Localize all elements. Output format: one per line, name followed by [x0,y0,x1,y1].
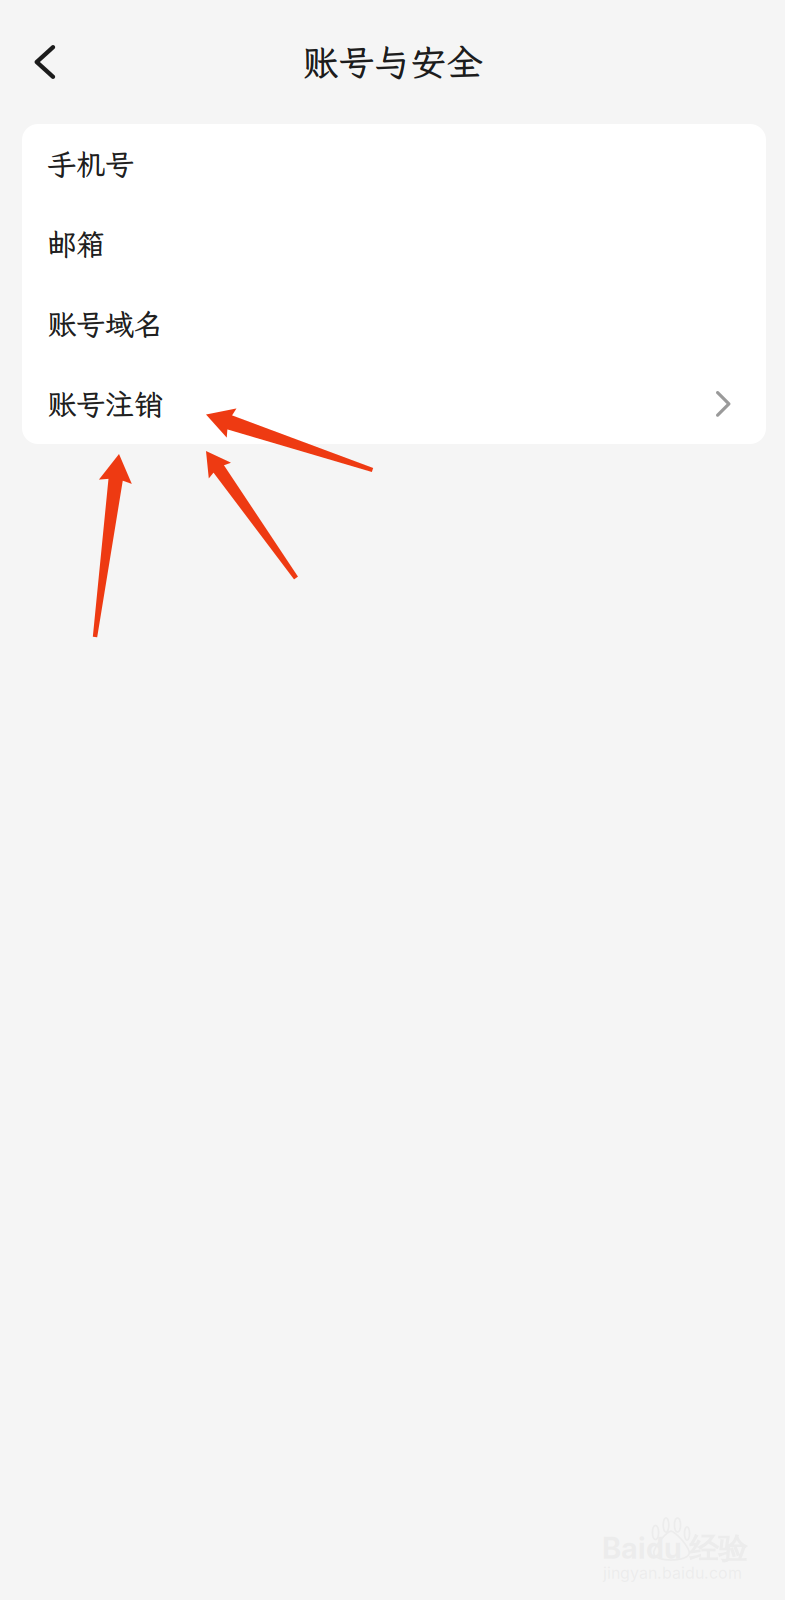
button[interactable]: Back [13,30,77,94]
button[interactable]: 邮箱 [22,204,766,284]
staticText: Baidu 经验 [602,1530,747,1567]
staticText: 账号与安全 [302,38,482,86]
button[interactable]: 账号注销 [22,364,766,444]
button[interactable]: 账号域名 [22,284,766,364]
button[interactable]: 手机号 [22,124,766,204]
staticText: 账号域名 [47,305,163,343]
staticText: 手机号 [47,145,134,183]
staticText: 账号注销 [47,385,163,423]
staticText: 邮箱 [47,225,105,263]
